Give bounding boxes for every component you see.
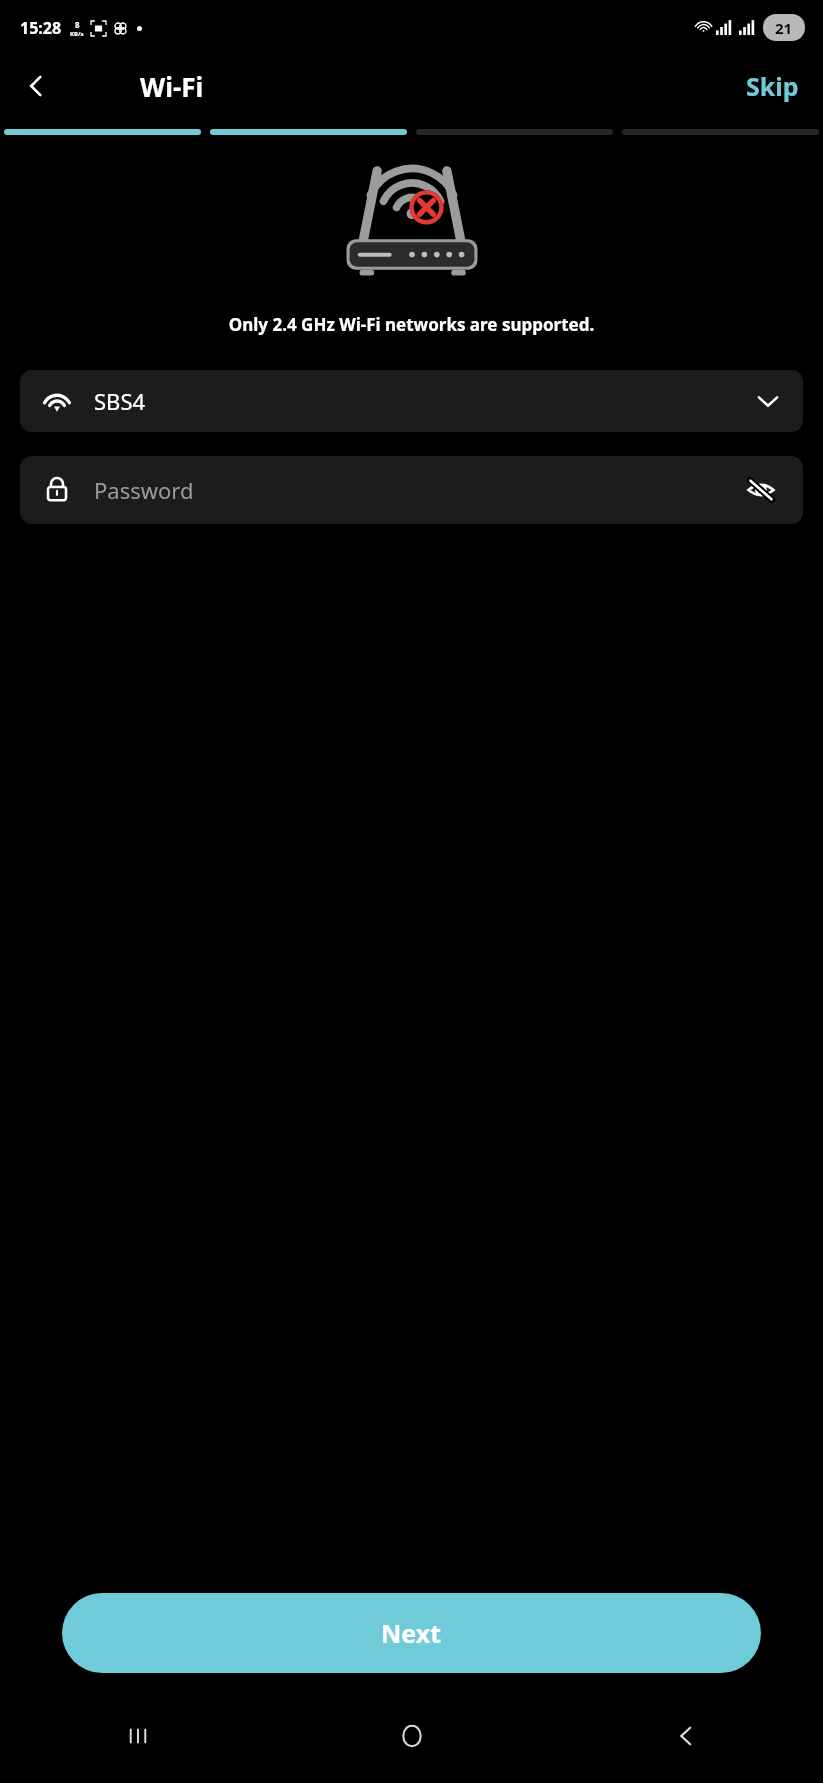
staticText: Wi-Fi <box>140 69 204 104</box>
staticText: SBS4 <box>94 386 146 416</box>
staticText: KB/s <box>70 30 84 38</box>
staticText: Next <box>381 1616 442 1650</box>
button[interactable]: Show password <box>741 470 781 510</box>
button[interactable]: SBS4 <box>20 370 803 432</box>
staticText: Password <box>94 475 194 505</box>
staticText: Only 2.4 GHz Wi-Fi networks are supporte… <box>0 313 823 336</box>
button[interactable]: Recent apps <box>0 1707 275 1765</box>
button[interactable]: Back <box>10 60 62 112</box>
button[interactable]: Back <box>549 1707 823 1765</box>
staticText: Skip <box>746 69 799 103</box>
button[interactable]: Next <box>62 1593 761 1673</box>
button[interactable]: Skip <box>736 63 809 109</box>
button[interactable]: Password <box>20 456 803 524</box>
staticText: 15:28 <box>20 17 62 39</box>
staticText: 21 <box>775 18 793 38</box>
staticText: 8 <box>75 19 80 30</box>
button[interactable]: Home <box>275 1707 549 1765</box>
